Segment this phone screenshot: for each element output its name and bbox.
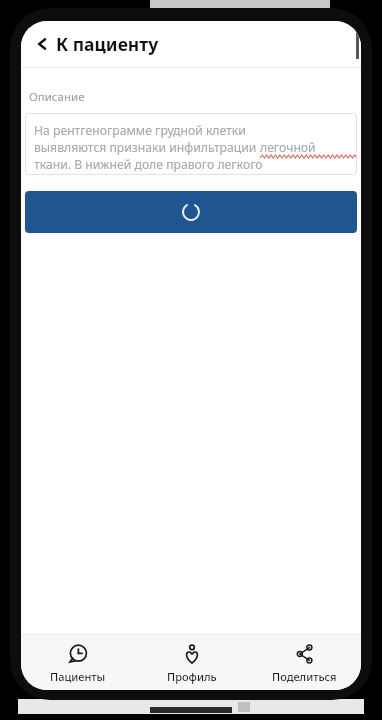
staticText: Профиль: [167, 669, 217, 684]
staticText: Пациенты: [50, 669, 106, 684]
button[interactable]: Отправить: [25, 191, 357, 233]
button[interactable]: На рентгенограмме грудной клетки: [25, 113, 357, 175]
button[interactable]: Пациенты: [21, 635, 135, 690]
staticText: На рентгенограмме грудной клетки: [34, 122, 246, 139]
staticText: Поделиться: [272, 669, 337, 684]
staticText: Описание: [29, 89, 85, 105]
button[interactable]: Профиль: [135, 635, 248, 690]
button[interactable]: К пациенту: [33, 21, 161, 67]
staticText: ткани. В нижней доле правого легкого: [34, 156, 263, 173]
staticText: К пациенту: [56, 32, 159, 56]
staticText: выявляются признаки инфильтрации: [34, 139, 260, 156]
staticText: легочной: [260, 139, 316, 156]
button[interactable]: Поделиться: [248, 635, 361, 690]
